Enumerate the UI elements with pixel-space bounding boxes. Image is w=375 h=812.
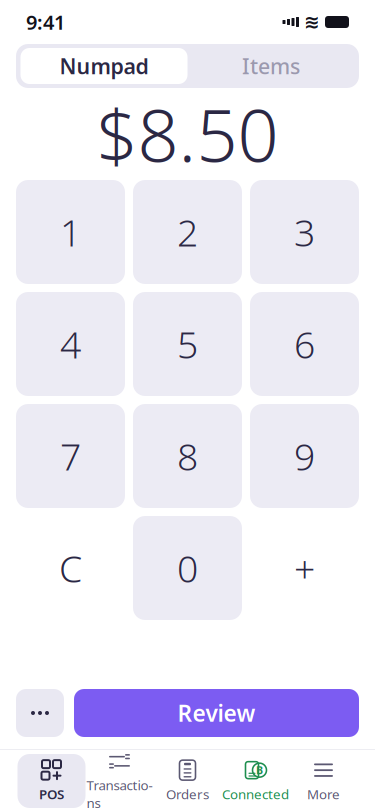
staticText: POS bbox=[39, 785, 64, 803]
button[interactable]: More bbox=[289, 754, 357, 808]
button[interactable]: Transactions bbox=[85, 754, 153, 808]
staticText: Transactions bbox=[86, 776, 152, 812]
button[interactable]: 6 bbox=[250, 292, 359, 396]
staticText: 1 bbox=[60, 207, 81, 257]
staticText: B bbox=[256, 763, 263, 777]
staticText: 2 bbox=[177, 207, 198, 257]
staticText: Numpad bbox=[59, 52, 148, 80]
staticText: Items bbox=[242, 52, 300, 80]
staticText: + bbox=[294, 543, 315, 593]
staticText: Orders bbox=[166, 785, 209, 803]
staticText: 3 bbox=[294, 207, 315, 257]
button[interactable]: C bbox=[16, 516, 125, 620]
staticText: ≋ bbox=[304, 11, 320, 33]
staticText: 9:41 bbox=[26, 9, 65, 35]
staticText: 8 bbox=[177, 431, 198, 481]
staticText: 6 bbox=[294, 319, 315, 369]
staticText: Review bbox=[177, 698, 255, 728]
button[interactable]: POS bbox=[17, 754, 85, 808]
button[interactable]: + bbox=[250, 516, 359, 620]
button[interactable]: Review bbox=[74, 689, 359, 737]
staticText: More bbox=[307, 785, 340, 803]
button[interactable]: 0 bbox=[133, 516, 242, 620]
staticText: 4 bbox=[60, 319, 81, 369]
button[interactable]: 1 bbox=[16, 180, 125, 284]
button[interactable]: 3 bbox=[250, 180, 359, 284]
staticText: C bbox=[59, 543, 82, 593]
staticText: 0 bbox=[177, 543, 198, 593]
staticText: 9 bbox=[294, 431, 315, 481]
button[interactable]: More options bbox=[16, 689, 64, 737]
button[interactable]: Items bbox=[187, 48, 354, 84]
button[interactable]: 4 bbox=[16, 292, 125, 396]
staticText: $8.50 bbox=[96, 86, 278, 182]
button[interactable]: 2 bbox=[133, 180, 242, 284]
staticText: 7 bbox=[60, 431, 81, 481]
button[interactable]: 9 bbox=[250, 404, 359, 508]
button[interactable]: Numpad bbox=[20, 48, 187, 84]
button[interactable]: B bbox=[221, 754, 289, 808]
staticText: Connected bbox=[222, 785, 289, 803]
button[interactable]: 7 bbox=[16, 404, 125, 508]
button[interactable]: 5 bbox=[133, 292, 242, 396]
button[interactable]: Orders bbox=[153, 754, 221, 808]
staticText: 5 bbox=[177, 319, 198, 369]
button[interactable]: 8 bbox=[133, 404, 242, 508]
